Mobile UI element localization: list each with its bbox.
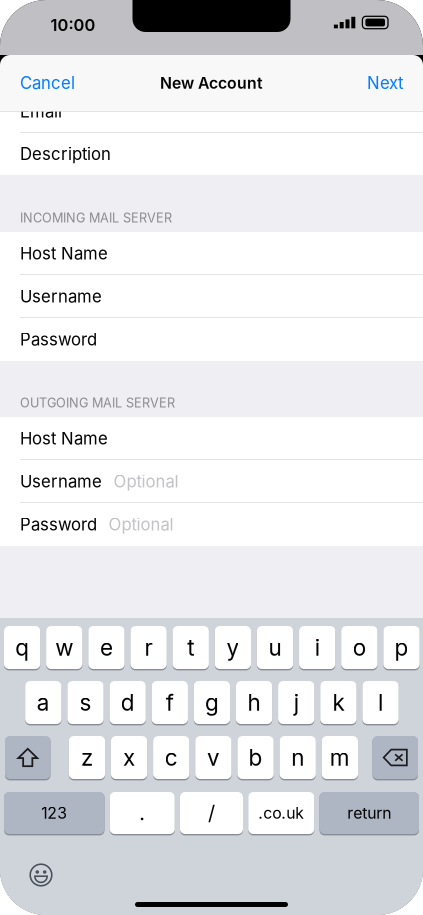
staticText: Description	[20, 144, 111, 164]
staticText: .co.uk	[258, 803, 304, 822]
staticText: b	[248, 744, 262, 771]
staticText: t	[187, 634, 194, 661]
staticText: Host Name	[20, 243, 108, 264]
staticText: i	[315, 634, 320, 661]
button[interactable]: y	[215, 626, 251, 669]
staticText: j	[294, 689, 299, 716]
staticText: a	[37, 689, 50, 716]
staticText: Username	[20, 286, 102, 307]
button[interactable]: t	[173, 626, 209, 669]
button[interactable]: Username	[0, 460, 423, 503]
button[interactable]: Emoji keyboard	[19, 853, 63, 897]
button[interactable]: x	[111, 736, 147, 779]
button[interactable]: Password	[0, 318, 423, 361]
staticText: Username	[20, 471, 102, 492]
staticText: OUTGOING MAIL SERVER	[20, 395, 175, 410]
staticText: s	[79, 689, 91, 716]
button[interactable]: n	[280, 736, 316, 779]
button[interactable]: Email	[0, 111, 423, 133]
button[interactable]: l	[362, 681, 399, 724]
button[interactable]: Description	[0, 133, 423, 175]
button[interactable]: i	[299, 626, 335, 669]
staticText: Optional	[108, 514, 173, 535]
button[interactable]: Host Name	[0, 417, 423, 460]
button[interactable]: s	[67, 681, 104, 724]
button[interactable]: f	[152, 681, 188, 724]
staticText: f	[166, 689, 174, 716]
staticText: Cancel	[20, 73, 75, 93]
staticText: l	[378, 689, 383, 716]
button[interactable]: Delete	[372, 736, 418, 779]
staticText: q	[15, 634, 29, 661]
staticText: u	[268, 634, 281, 661]
staticText: c	[165, 744, 178, 771]
button[interactable]: u	[257, 626, 293, 669]
staticText: y	[226, 634, 239, 661]
button[interactable]: z	[69, 736, 105, 779]
staticText: n	[291, 744, 304, 771]
button[interactable]: p	[383, 626, 420, 669]
button[interactable]: k	[320, 681, 356, 724]
button[interactable]: v	[195, 736, 231, 779]
button[interactable]: b	[237, 736, 274, 779]
staticText: 123	[41, 803, 67, 822]
button[interactable]: Cancel	[0, 61, 87, 105]
staticText: Password	[20, 329, 97, 350]
staticText: Next	[367, 73, 403, 93]
staticText: INCOMING MAIL SERVER	[20, 210, 172, 225]
staticText: x	[123, 744, 135, 771]
staticText: /	[208, 801, 215, 825]
staticText: .	[139, 801, 145, 825]
button[interactable]: w	[46, 626, 82, 669]
staticText: w	[55, 634, 73, 661]
button[interactable]: /	[180, 792, 243, 834]
button[interactable]: .co.uk	[248, 792, 314, 834]
staticText: d	[121, 689, 135, 716]
button[interactable]: Username	[0, 275, 423, 318]
button[interactable]: r	[130, 626, 167, 669]
staticText: New Account	[160, 73, 263, 92]
staticText: 10:00	[50, 15, 95, 35]
button[interactable]: h	[236, 681, 272, 724]
button[interactable]: j	[278, 681, 314, 724]
button[interactable]: Next	[355, 61, 423, 105]
button[interactable]: d	[109, 681, 146, 724]
staticText: return	[347, 803, 391, 822]
button[interactable]: o	[341, 626, 377, 669]
button[interactable]: Shift	[5, 736, 50, 779]
staticText: k	[332, 689, 344, 716]
button[interactable]: Password	[0, 503, 423, 546]
button[interactable]: e	[88, 626, 125, 669]
staticText: r	[145, 634, 153, 661]
button[interactable]: return	[319, 792, 419, 834]
button[interactable]: m	[322, 736, 358, 779]
button[interactable]: .	[110, 792, 175, 834]
button[interactable]: q	[4, 626, 40, 669]
button[interactable]: a	[25, 681, 61, 724]
staticText: Password	[20, 514, 97, 535]
staticText: o	[353, 634, 366, 661]
button[interactable]: g	[194, 681, 230, 724]
button[interactable]: c	[153, 736, 189, 779]
staticText: Email	[20, 101, 62, 122]
staticText: p	[394, 634, 408, 661]
staticText: Host Name	[20, 428, 108, 449]
staticText: e	[100, 634, 113, 661]
staticText: m	[330, 744, 350, 771]
button[interactable]: 123	[4, 792, 104, 834]
staticText: h	[248, 689, 261, 716]
staticText: z	[81, 744, 93, 771]
staticText: v	[207, 744, 220, 771]
button[interactable]: Host Name	[0, 232, 423, 275]
staticText: g	[205, 689, 219, 716]
staticText: Optional	[113, 471, 178, 492]
